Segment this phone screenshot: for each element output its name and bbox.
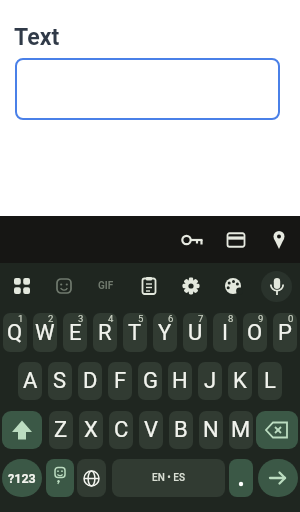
- button[interactable]: Q: [3, 313, 27, 352]
- staticText: V: [144, 417, 159, 443]
- button[interactable]: R: [93, 313, 117, 352]
- button[interactable]: A: [18, 362, 42, 400]
- staticText: R: [98, 320, 112, 346]
- button[interactable]: [2, 411, 42, 449]
- button[interactable]: ?123: [2, 459, 42, 497]
- staticText: 6: [168, 313, 174, 324]
- staticText: Z: [54, 417, 68, 443]
- staticText: S: [53, 368, 67, 394]
- staticText: 1: [18, 313, 24, 324]
- staticText: Text: [14, 24, 60, 51]
- staticText: B: [174, 417, 188, 443]
- staticText: Q: [7, 320, 23, 346]
- staticText: M: [231, 417, 251, 443]
- staticText: O: [247, 320, 263, 346]
- staticText: 7: [198, 313, 204, 324]
- button[interactable]: J: [198, 362, 222, 400]
- button[interactable]: [261, 271, 292, 302]
- staticText: P: [278, 320, 292, 346]
- staticText: 9: [258, 313, 264, 324]
- button[interactable]: [219, 272, 247, 300]
- button[interactable]: [229, 459, 253, 497]
- staticText: L: [264, 368, 276, 394]
- button[interactable]: Z: [49, 411, 73, 449]
- button[interactable]: U: [183, 313, 207, 352]
- button[interactable]: C: [109, 411, 133, 449]
- button[interactable]: M: [229, 411, 253, 449]
- button[interactable]: [15, 58, 280, 120]
- button[interactable]: [135, 272, 163, 300]
- button[interactable]: L: [258, 362, 282, 400]
- button[interactable]: G: [138, 362, 162, 400]
- button[interactable]: K: [228, 362, 252, 400]
- staticText: U: [188, 320, 203, 346]
- staticText: ?123: [8, 471, 36, 486]
- staticText: 3: [78, 313, 84, 324]
- button[interactable]: D: [78, 362, 102, 400]
- button[interactable]: [224, 228, 248, 252]
- staticText: 0: [288, 313, 294, 324]
- button[interactable]: [77, 459, 106, 497]
- staticText: C: [114, 417, 129, 443]
- button[interactable]: [267, 228, 291, 252]
- button[interactable]: H: [168, 362, 192, 400]
- staticText: F: [114, 368, 127, 394]
- button[interactable]: B: [169, 411, 193, 449]
- button[interactable]: T: [123, 313, 147, 352]
- button[interactable]: S: [48, 362, 72, 400]
- staticText: G: [143, 368, 158, 394]
- button[interactable]: [181, 228, 205, 252]
- staticText: I: [222, 320, 228, 346]
- button[interactable]: [258, 459, 298, 497]
- button[interactable]: V: [139, 411, 163, 449]
- staticText: H: [172, 368, 188, 394]
- staticText: A: [23, 368, 38, 394]
- button[interactable]: [8, 272, 36, 300]
- button[interactable]: F: [108, 362, 132, 400]
- button[interactable]: [46, 459, 74, 497]
- button[interactable]: I: [213, 313, 237, 352]
- staticText: 4: [108, 313, 114, 324]
- staticText: W: [35, 320, 55, 346]
- button[interactable]: P: [273, 313, 297, 352]
- staticText: GIF: [98, 280, 114, 292]
- staticText: 2: [48, 313, 54, 324]
- button[interactable]: [177, 272, 205, 300]
- button[interactable]: [50, 272, 78, 300]
- staticText: 5: [138, 313, 144, 324]
- staticText: D: [83, 368, 98, 394]
- button[interactable]: N: [199, 411, 223, 449]
- staticText: E: [69, 320, 82, 346]
- staticText: T: [128, 320, 142, 346]
- staticText: 8: [228, 313, 234, 324]
- button[interactable]: W: [33, 313, 57, 352]
- staticText: K: [233, 368, 247, 394]
- button[interactable]: EN • ES: [112, 459, 225, 497]
- button[interactable]: E: [63, 313, 87, 352]
- button[interactable]: Y: [153, 313, 177, 352]
- button[interactable]: X: [79, 411, 103, 449]
- button[interactable]: O: [243, 313, 267, 352]
- staticText: N: [203, 417, 219, 443]
- staticText: X: [84, 417, 98, 443]
- staticText: Y: [158, 320, 172, 346]
- button[interactable]: GIF: [92, 272, 120, 300]
- staticText: J: [204, 368, 217, 394]
- staticText: EN • ES: [152, 472, 185, 484]
- button[interactable]: [256, 411, 298, 449]
